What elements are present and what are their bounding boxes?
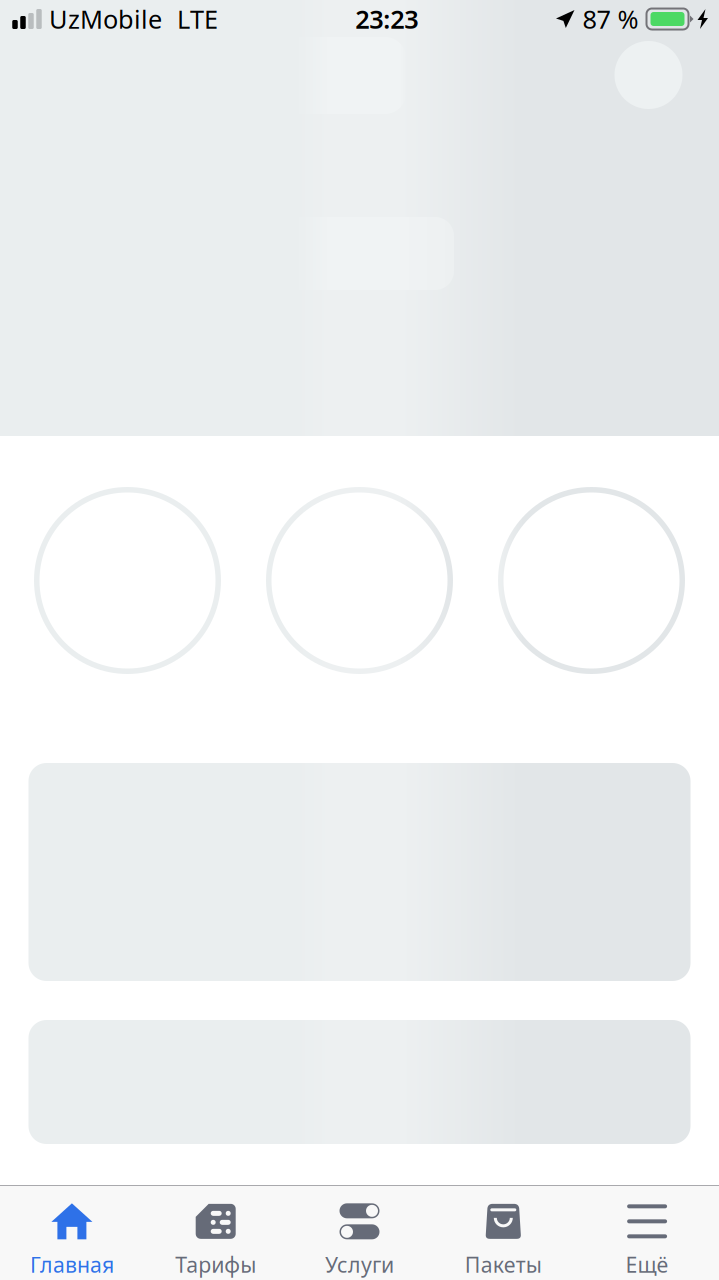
staticText: 87 % (582, 2, 638, 36)
button[interactable]: Ещё (575, 1186, 719, 1280)
staticText: Пакеты (465, 1250, 542, 1279)
staticText: Ещё (626, 1250, 669, 1279)
staticText: LTE (177, 2, 218, 36)
staticText: 23:23 (355, 2, 418, 36)
staticText: Тарифы (175, 1250, 256, 1279)
staticText: Главная (30, 1250, 114, 1279)
button[interactable]: Услуги (288, 1186, 431, 1280)
button[interactable]: Главная (0, 1186, 144, 1280)
button[interactable]: Пакеты (431, 1186, 575, 1280)
staticText: Услуги (325, 1250, 394, 1279)
button[interactable]: Тарифы (144, 1186, 288, 1280)
staticText: UzMobile (49, 2, 162, 36)
